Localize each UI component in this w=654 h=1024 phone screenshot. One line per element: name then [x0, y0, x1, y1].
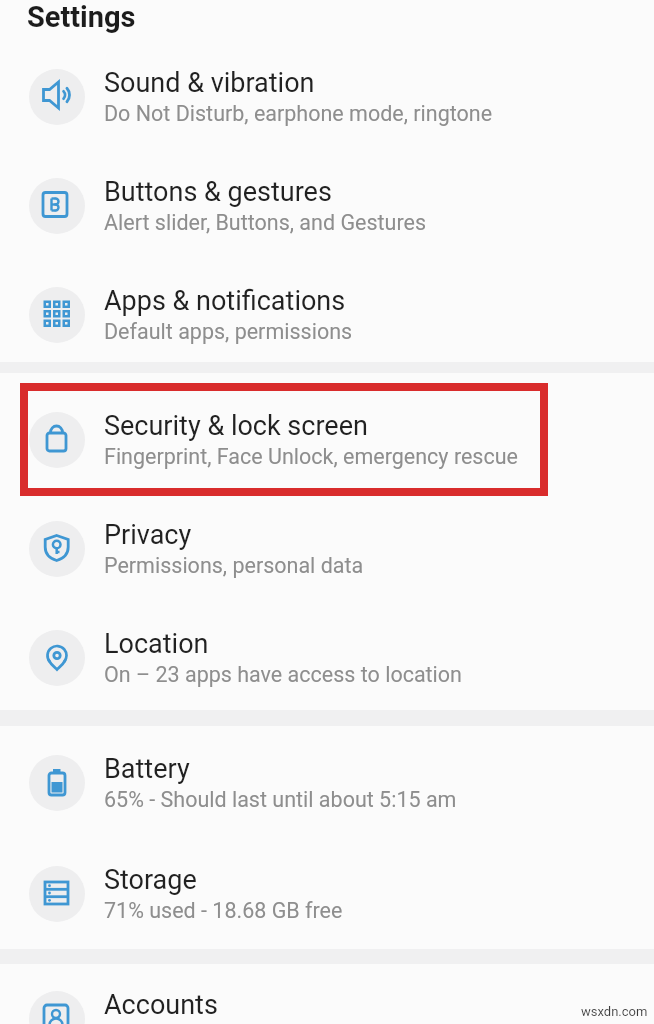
- staticText: Buttons & gestures: [104, 176, 332, 208]
- staticText: Fingerprint, Face Unlock, emergency resc…: [104, 444, 518, 469]
- button[interactable]: Security & lock screen: [0, 385, 654, 494]
- staticText: Settings: [27, 0, 136, 34]
- staticText: Permissions, personal data: [104, 553, 364, 578]
- button[interactable]: Storage: [0, 839, 654, 948]
- staticText: 71% used - 18.68 GB free: [104, 898, 343, 923]
- staticText: Do Not Disturb, earphone mode, ringtone: [104, 101, 493, 126]
- staticText: Sound & vibration: [104, 67, 315, 99]
- staticText: Apps & notifications: [104, 285, 346, 317]
- button[interactable]: Battery: [0, 728, 654, 837]
- staticText: wsxdn.com: [581, 1004, 648, 1019]
- button[interactable]: Location: [0, 603, 654, 712]
- staticText: On – 23 apps have access to location: [104, 662, 462, 687]
- staticText: Alert slider, Buttons, and Gestures: [104, 210, 427, 235]
- button[interactable]: Privacy: [0, 494, 654, 603]
- staticText: Privacy: [104, 519, 192, 551]
- staticText: Default apps, permissions: [104, 319, 353, 344]
- button[interactable]: Apps & notifications: [0, 260, 654, 369]
- staticText: 65% - Should last until about 5:15 am: [104, 787, 457, 812]
- staticText: Location: [104, 628, 209, 660]
- staticText: Security & lock screen: [104, 410, 368, 442]
- staticText: Battery: [104, 753, 190, 785]
- button[interactable]: Sound & vibration: [0, 42, 654, 151]
- staticText: Accounts: [104, 989, 218, 1021]
- staticText: Storage: [104, 864, 197, 896]
- button[interactable]: Accounts: [0, 964, 654, 1024]
- button[interactable]: Buttons & gestures: [0, 151, 654, 260]
